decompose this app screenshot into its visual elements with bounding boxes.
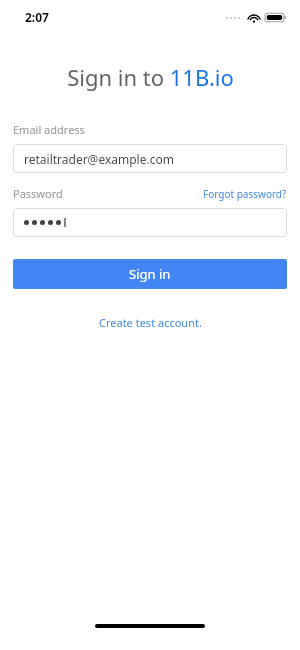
- other: Wi-Fi: [247, 12, 261, 23]
- button[interactable]: Forgot password?: [203, 187, 287, 201]
- staticText: Sign in: [129, 265, 171, 283]
- button[interactable]: Create test account.: [99, 315, 202, 330]
- button[interactable]: Sign in: [13, 259, 287, 289]
- button[interactable]: [13, 208, 287, 237]
- other: Cellular signal: [226, 14, 243, 22]
- staticText: Forgot password?: [203, 187, 287, 201]
- staticText: retailtrader@example.com: [24, 151, 174, 167]
- staticText: Password: [13, 186, 63, 201]
- staticText: Sign in to 11B.io: [67, 62, 234, 92]
- button[interactable]: retailtrader@example.com: [13, 144, 287, 173]
- other: Battery: [265, 12, 287, 23]
- staticText: 2:07: [25, 9, 49, 25]
- staticText: Create test account.: [99, 315, 202, 330]
- staticText: Email address: [13, 122, 85, 137]
